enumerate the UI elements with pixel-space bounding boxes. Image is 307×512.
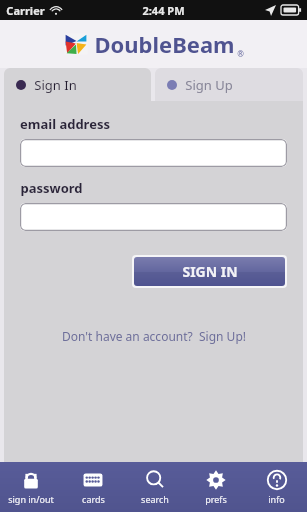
button[interactable]: Don't have an account? Sign Up! <box>62 328 246 344</box>
button[interactable]: SIGN IN <box>134 257 285 286</box>
button[interactable] <box>20 139 287 167</box>
staticText: email address <box>20 115 110 133</box>
staticText: SIGN IN <box>182 262 238 281</box>
staticText: Carrier <box>6 3 45 18</box>
button[interactable]: sign in/out <box>0 462 62 512</box>
button[interactable]: search <box>124 462 185 512</box>
staticText: info <box>268 493 285 505</box>
staticText: Sign Up <box>185 76 233 94</box>
button[interactable]: info <box>246 462 307 512</box>
button[interactable]: Sign In <box>4 68 151 101</box>
staticText: password <box>20 179 83 197</box>
button[interactable]: prefs <box>185 462 246 512</box>
staticText: Sign In <box>34 76 77 94</box>
staticText: DoubleBeam <box>94 29 235 59</box>
button[interactable] <box>20 203 287 231</box>
button[interactable]: Sign Up <box>155 68 303 101</box>
staticText: 2:44 PM <box>142 3 185 18</box>
button[interactable]: cards <box>62 462 124 512</box>
staticText: sign in/out <box>8 493 54 505</box>
staticText: ® <box>237 48 244 59</box>
staticText: cards <box>82 493 105 505</box>
staticText: prefs <box>205 493 227 505</box>
staticText: Don't have an account? Sign Up! <box>62 328 246 344</box>
staticText: search <box>141 493 169 505</box>
